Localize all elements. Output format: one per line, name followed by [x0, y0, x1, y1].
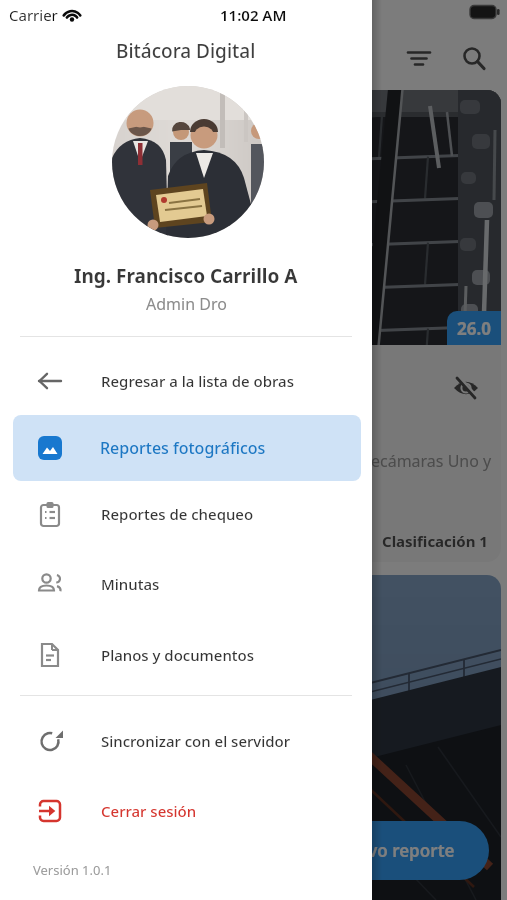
staticText: Reportes de chequeo — [101, 504, 254, 524]
staticText: Regresar a la lista de obras — [101, 371, 294, 391]
button[interactable]: Sincronizar con el servidor — [16, 713, 360, 769]
staticText: Bitácora Digital — [116, 38, 256, 64]
button[interactable]: Reportes fotográficos — [13, 415, 361, 481]
staticText: Admin Dro — [146, 293, 227, 315]
button[interactable] — [6, 575, 501, 900]
staticText: Planos y documentos — [101, 645, 255, 665]
staticText: Nuevo reporte — [334, 839, 455, 862]
button[interactable]: Nuevo reporte — [300, 821, 489, 880]
staticText: Ing. Francisco Carrillo A — [74, 263, 298, 289]
staticText: Clasificación 1 — [382, 531, 488, 551]
staticText: Recámaras Uno y — [361, 450, 492, 472]
staticText: Carrier — [9, 5, 58, 25]
button[interactable]: Regresar a la lista de obras — [16, 353, 360, 409]
staticText: 11:02 AM — [220, 5, 287, 25]
button[interactable]: Reportes de chequeo — [16, 486, 360, 542]
staticText: Reportes fotográficos — [100, 437, 266, 459]
staticText: Versión 1.0.1 — [33, 861, 112, 879]
button[interactable]: Minutas — [16, 556, 360, 612]
button[interactable]: 26.0 — [6, 90, 501, 562]
staticText: 26.0 — [457, 317, 491, 340]
staticText: Sincronizar con el servidor — [101, 731, 291, 751]
button[interactable]: Cerrar sesión — [16, 783, 360, 839]
staticText: Minutas — [101, 574, 160, 594]
staticText: Cerrar sesión — [101, 801, 197, 821]
button[interactable]: Planos y documentos — [16, 627, 360, 683]
